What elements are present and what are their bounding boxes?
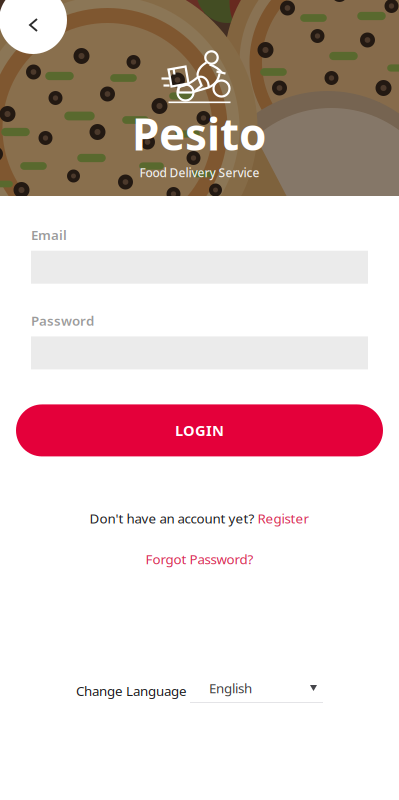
button[interactable]: Register (257, 509, 309, 527)
staticText: Pesito (132, 104, 267, 162)
staticText: Register (257, 509, 309, 527)
staticText: Password (31, 312, 94, 329)
staticText: Email (31, 226, 67, 244)
button[interactable]: English (190, 674, 323, 703)
staticText: Forgot Password? (145, 550, 253, 568)
button[interactable]: LOGIN (16, 404, 383, 456)
staticText: Food Delivery Service (139, 164, 259, 180)
staticText: Change Language (76, 682, 187, 700)
staticText: LOGIN (175, 421, 224, 440)
staticText: Don't have an account yet? (89, 509, 257, 527)
staticText: English (209, 679, 252, 697)
button[interactable]: Back (0, 0, 70, 56)
button[interactable]: Forgot Password? (145, 550, 253, 568)
